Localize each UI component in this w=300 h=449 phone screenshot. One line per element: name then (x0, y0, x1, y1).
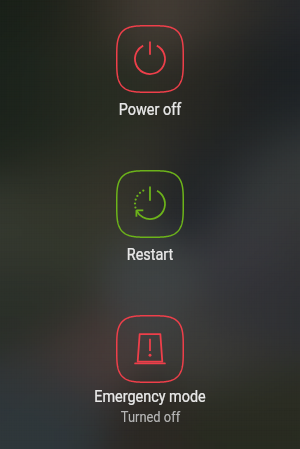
staticText: Turned off (121, 409, 180, 425)
button[interactable]: Emergency mode (116, 315, 184, 383)
button[interactable]: Power off (116, 25, 184, 93)
staticText: Restart (127, 245, 173, 264)
staticText: Emergency mode (94, 387, 206, 406)
staticText: Power off (118, 100, 181, 119)
button[interactable]: Restart (116, 170, 184, 238)
